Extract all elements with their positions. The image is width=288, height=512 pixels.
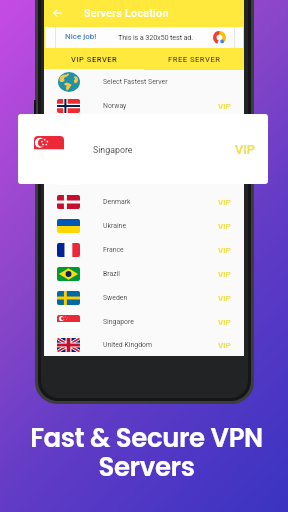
button[interactable]: VIP SERVER [44,49,144,70]
staticText: VIP [218,102,231,111]
button[interactable]: Canada [44,142,244,166]
button[interactable]: Norway [44,94,244,118]
staticText: VIP [218,198,231,207]
staticText: Norway [103,102,127,110]
button[interactable]: Singapore [44,310,244,334]
staticText: Canada [103,150,127,158]
staticText: Denmark [103,198,131,206]
button[interactable]: France [44,238,244,262]
staticText: Servers Location [84,7,169,19]
staticText: Select Fastest Server [103,78,168,86]
button[interactable]: Nice job! [45,27,243,48]
staticText: VIP [218,341,231,350]
staticText: VIP [235,142,255,157]
button[interactable]: Ukraine [44,214,244,238]
staticText: This is a 320x50 test ad. [118,33,194,42]
staticText: Sweden [103,294,128,302]
staticText: FREE SERVER [168,55,221,64]
button[interactable]: Germany [44,118,244,142]
staticText: VIP [218,222,231,231]
staticText: VIP [218,318,231,327]
button[interactable]: United Kingdom [44,334,244,356]
button[interactable]: Sweden [44,286,244,310]
staticText: United Kingdom [103,341,152,349]
staticText: Nice job! [65,32,97,41]
button[interactable]: Back [44,0,71,26]
staticText: Singapore [103,318,134,326]
button[interactable]: Select Fastest Server [44,70,244,94]
button[interactable]: FREE SERVER [144,49,244,70]
staticText: Ukraine [103,222,127,230]
button[interactable]: Denmark [44,190,244,214]
staticText: VIP [218,246,231,255]
staticText: Fast & Secure VPN Servers [30,420,263,485]
staticText: VIP [218,294,231,303]
staticText: VIP [218,270,231,279]
staticText: Singapore [93,145,133,155]
button[interactable]: Brazil [44,262,244,286]
staticText: France [103,246,124,254]
button[interactable]: Singapore [18,114,268,184]
staticText: VIP SERVER [71,55,118,64]
staticText: Brazil [103,270,121,278]
